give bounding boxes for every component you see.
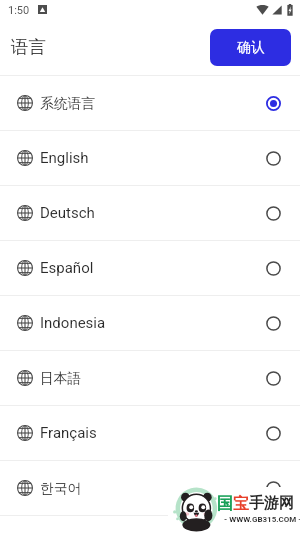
button[interactable]: Español	[0, 241, 300, 295]
staticText: 日本語	[40, 370, 82, 387]
other: Not selected	[266, 316, 281, 331]
other: Battery charging	[287, 4, 293, 16]
staticText: 한국어	[40, 480, 82, 497]
staticText: 系统语言	[40, 95, 96, 112]
staticText: Español	[40, 259, 94, 277]
button[interactable]: 确认	[210, 29, 291, 66]
staticText: 宝	[233, 494, 249, 514]
staticText: - WWW.GB315.COM -	[224, 515, 300, 524]
button[interactable]: 系统语言	[0, 76, 300, 130]
other: Not selected	[266, 481, 281, 496]
button[interactable]: Italiano	[0, 516, 300, 533]
button[interactable]: 한국어	[0, 461, 300, 515]
button[interactable]: Indonesia	[0, 296, 300, 350]
other: Not selected	[266, 371, 281, 386]
staticText: English	[40, 149, 89, 167]
other: Wi-Fi	[256, 5, 269, 15]
button[interactable]: English	[0, 131, 300, 185]
staticText: 国	[217, 494, 233, 514]
staticText: Français	[40, 424, 97, 442]
staticText: Indonesia	[40, 314, 106, 332]
button[interactable]: Deutsch	[0, 186, 300, 240]
other: Selected	[266, 96, 281, 111]
other: Not selected	[266, 426, 281, 441]
staticText: Deutsch	[40, 204, 95, 222]
other: Not selected	[266, 261, 281, 276]
other: Mobile signal	[272, 5, 282, 15]
staticText: 语言	[11, 36, 46, 58]
staticText: 确认	[237, 39, 265, 57]
button[interactable]: 日本語	[0, 351, 300, 405]
staticText: 手游网	[249, 494, 294, 513]
other: Not selected	[266, 151, 281, 166]
staticText: 1:50	[8, 4, 30, 17]
other: Not selected	[266, 206, 281, 221]
button[interactable]: Français	[0, 406, 300, 460]
